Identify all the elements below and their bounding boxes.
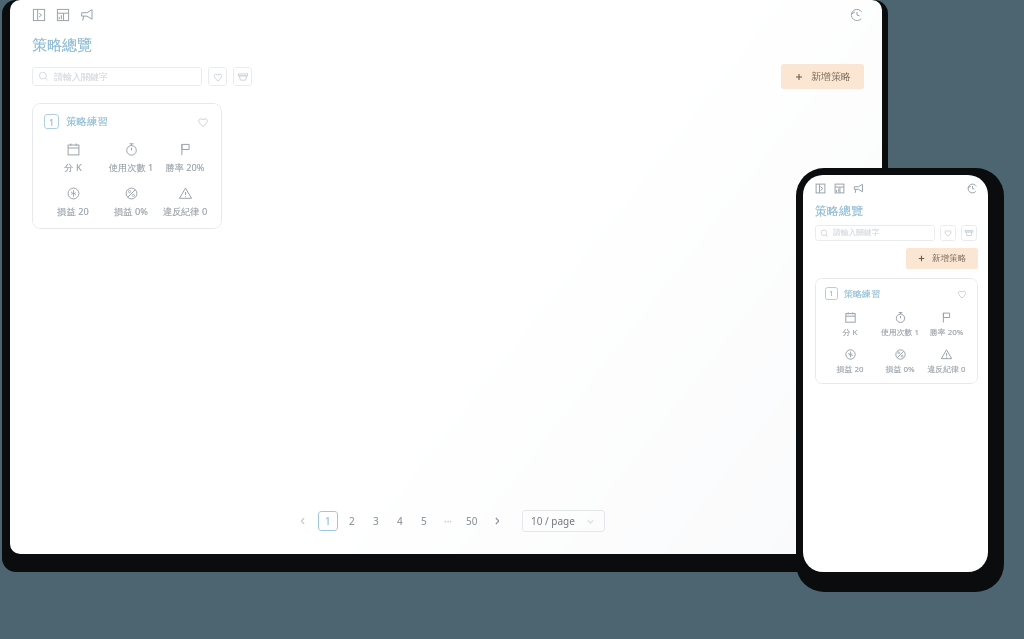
staticText: 違反紀律 0 xyxy=(925,364,968,375)
button[interactable]: 1 xyxy=(32,103,222,229)
staticText: ··· xyxy=(444,514,453,528)
staticText: 使用次數 1 xyxy=(102,161,160,174)
staticText: 策略總覽 xyxy=(32,36,92,55)
staticText: 違反紀律 0 xyxy=(160,205,210,218)
staticText: 分 K xyxy=(44,161,102,174)
button[interactable]: Favorite xyxy=(196,115,210,129)
staticText: 3 xyxy=(373,514,379,528)
button[interactable]: Archive filter xyxy=(961,225,977,241)
staticText: 5 xyxy=(421,514,427,528)
button[interactable]: 1 xyxy=(815,278,978,384)
staticText: 策略練習 xyxy=(844,288,881,299)
button[interactable]: Announcements xyxy=(80,8,94,22)
staticText: 1 xyxy=(829,288,834,299)
button[interactable]: 請輸入關鍵字 xyxy=(32,67,202,86)
staticText: 使用次數 1 xyxy=(875,327,925,338)
staticText: 請輸入關鍵字 xyxy=(54,71,108,82)
button[interactable]: 1 xyxy=(318,511,338,531)
staticText: 分 K xyxy=(825,327,875,338)
button[interactable]: 新增策略 xyxy=(781,64,864,89)
button[interactable]: Dashboard xyxy=(834,183,845,194)
staticText: 勝率 20% xyxy=(925,327,968,338)
button[interactable]: Next page xyxy=(486,510,508,532)
staticText: 新增策略 xyxy=(932,253,967,264)
staticText: 損益 20 xyxy=(44,205,102,218)
staticText: 勝率 20% xyxy=(160,161,210,174)
button[interactable]: Favorites filter xyxy=(940,225,956,241)
button[interactable]: 50 xyxy=(462,511,482,531)
button[interactable]: Favorites filter xyxy=(208,67,227,86)
button[interactable]: Archive filter xyxy=(233,67,252,86)
button[interactable]: 10 / page xyxy=(522,510,605,532)
staticText: 策略練習 xyxy=(66,115,108,128)
staticText: 50 xyxy=(466,514,478,528)
staticText: 損益 0% xyxy=(875,364,925,375)
button[interactable]: Previous page xyxy=(292,510,314,532)
staticText: 4 xyxy=(397,514,403,528)
button[interactable]: Favorite xyxy=(956,288,968,300)
staticText: 新增策略 xyxy=(811,70,851,83)
button[interactable]: ··· xyxy=(438,511,458,531)
button[interactable]: Toggle sidebar xyxy=(815,183,826,194)
staticText: 2 xyxy=(349,514,355,528)
staticText: 請輸入關鍵字 xyxy=(833,228,880,238)
button[interactable]: Announcements xyxy=(853,183,864,194)
staticText: 損益 0% xyxy=(102,205,160,218)
button[interactable]: 2 xyxy=(342,511,362,531)
staticText: 策略總覽 xyxy=(815,203,863,218)
button[interactable]: History xyxy=(850,8,864,22)
button[interactable]: 3 xyxy=(366,511,386,531)
button[interactable]: 請輸入關鍵字 xyxy=(815,225,935,241)
staticText: 1 xyxy=(325,514,331,528)
button[interactable]: History xyxy=(967,183,978,194)
button[interactable]: 4 xyxy=(390,511,410,531)
staticText: 損益 20 xyxy=(825,364,875,375)
staticText: 1 xyxy=(49,116,55,128)
button[interactable]: 5 xyxy=(414,511,434,531)
staticText: 10 / page xyxy=(531,514,575,528)
button[interactable]: Dashboard xyxy=(56,8,70,22)
button[interactable]: Toggle sidebar xyxy=(32,8,46,22)
button[interactable]: 新增策略 xyxy=(906,248,978,269)
